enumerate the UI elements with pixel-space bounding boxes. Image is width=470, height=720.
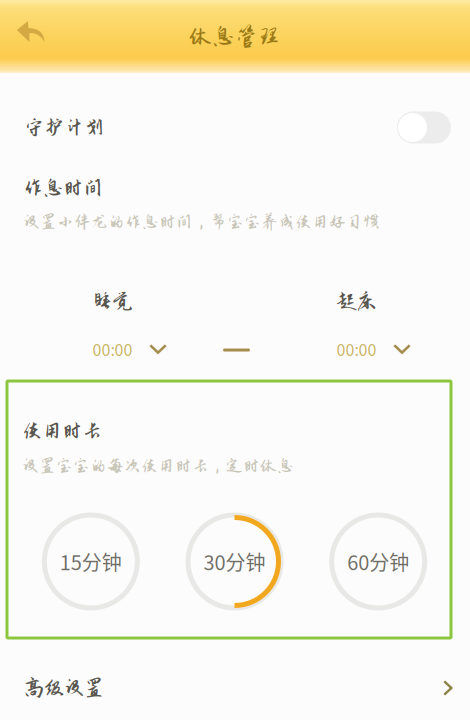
button[interactable]: 00:00 xyxy=(335,329,411,369)
staticText: 设置小伴龙的作息时间，帮宝宝养成使用好习惯 xyxy=(23,213,380,231)
staticText: 设置宝宝的每次使用时长，定时休息 xyxy=(22,457,294,475)
staticText: 起床 xyxy=(336,290,376,313)
staticText: 守护计划 xyxy=(24,116,104,139)
staticText: 00:00 xyxy=(92,337,132,361)
staticText: 00:00 xyxy=(336,337,376,361)
staticText: 15分钟 xyxy=(60,547,122,576)
staticText: 使用时长 xyxy=(22,420,102,442)
button[interactable]: 15分钟 xyxy=(44,515,137,608)
staticText: 30分钟 xyxy=(203,547,265,576)
staticText: 高级设置 xyxy=(24,677,104,699)
staticText: 作息时间 xyxy=(23,177,103,199)
button[interactable]: 返回 xyxy=(0,4,56,69)
button[interactable]: 30分钟 xyxy=(188,515,281,608)
button[interactable]: 60分钟 xyxy=(332,515,425,608)
staticText: 休息管理 xyxy=(189,24,281,49)
button[interactable]: 高级设置 xyxy=(0,638,470,720)
button[interactable]: 00:00 xyxy=(91,329,167,369)
button[interactable]: 守护计划开关 xyxy=(397,101,451,154)
staticText: 睡觉 xyxy=(92,290,132,313)
staticText: 60分钟 xyxy=(347,547,409,576)
